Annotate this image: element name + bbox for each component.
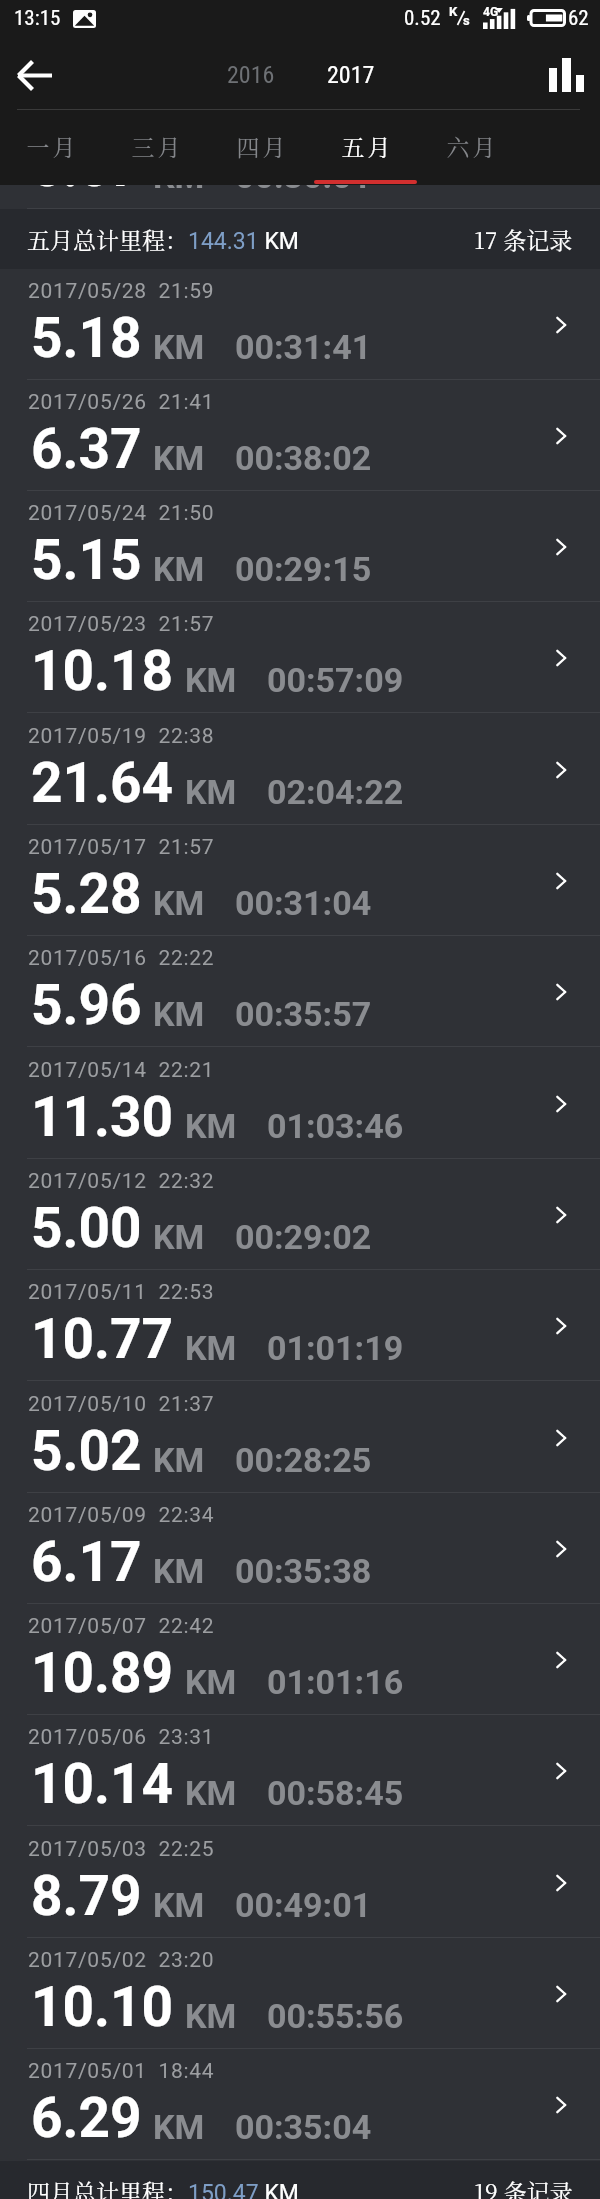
button[interactable]: 2017/05/10 21:37	[0, 1382, 600, 1493]
staticText: 三月	[130, 130, 182, 163]
staticText: 8.79	[31, 1864, 142, 1928]
staticText: 六月	[445, 130, 497, 163]
button[interactable]: 2016	[213, 49, 289, 101]
staticText: 2017/05/24 21:50	[28, 501, 215, 526]
staticText: 2017/05/11 22:53	[28, 1280, 215, 1305]
button[interactable]: 2017/05/23 21:57	[0, 602, 600, 713]
staticText: 五月总计里程：144.31 KM	[27, 223, 299, 256]
staticText: K	[449, 4, 458, 19]
button[interactable]: 一月	[0, 110, 101, 185]
staticText: 5.18	[31, 306, 142, 370]
staticText: 00:55:56	[267, 1996, 404, 2036]
staticText: 21.64	[31, 751, 174, 815]
staticText: 2017/05/09 22:34	[28, 1503, 215, 1528]
staticText: 62	[568, 6, 589, 31]
button[interactable]: 2017/05/11 22:53	[0, 1270, 600, 1381]
staticText: KM	[153, 883, 205, 923]
staticText: KM	[185, 660, 237, 700]
staticText: KM	[185, 1328, 237, 1368]
button[interactable]: 2017/05/02 23:20	[0, 1938, 600, 2049]
staticText: 01:01:19	[267, 1328, 404, 1368]
staticText: 00:30:01	[235, 156, 372, 196]
staticText: 2017/05/26 21:41	[28, 390, 215, 415]
button[interactable]: 2017	[313, 49, 389, 101]
staticText: 10.77	[31, 1307, 174, 1371]
staticText: 10.89	[31, 1641, 174, 1705]
staticText: KM	[153, 438, 205, 478]
staticText: 00:29:15	[235, 549, 372, 589]
staticText: 00:35:38	[235, 1551, 372, 1591]
staticText: KM	[153, 1217, 205, 1257]
staticText: 2017/05/28 21:59	[28, 279, 215, 304]
staticText: 2017/05/17 21:57	[28, 835, 215, 860]
staticText: 5.00	[31, 1196, 142, 1260]
staticText: 00:31:41	[235, 327, 372, 367]
staticText: 4G	[483, 5, 499, 19]
button[interactable]: 三月	[101, 110, 206, 185]
staticText: KM	[153, 2107, 205, 2147]
staticText: 5.96	[31, 973, 142, 1037]
staticText: 02:04:22	[267, 772, 404, 812]
button[interactable]: 四月	[206, 110, 311, 185]
button[interactable]: 2017/05/14 22:21	[0, 1048, 600, 1159]
staticText: 2017/05/16 22:22	[28, 946, 215, 971]
staticText: 00:31:04	[235, 883, 372, 923]
staticText: 00:28:25	[235, 1440, 372, 1480]
button[interactable]: 2017/05/07 22:42	[0, 1604, 600, 1715]
staticText: 6.37	[31, 417, 142, 481]
button[interactable]: 2017/05/09 22:34	[0, 1493, 600, 1604]
staticText: KM	[153, 1551, 205, 1591]
staticText: 2017/05/23 21:57	[28, 612, 215, 637]
button[interactable]: 2017/05/12 22:32	[0, 1159, 600, 1270]
staticText: 17 条记录	[474, 223, 573, 256]
staticText: 10.14	[31, 1752, 174, 1816]
staticText: 2017/05/12 22:32	[28, 1169, 215, 1194]
staticText: 00:57:09	[267, 660, 404, 700]
staticText: KM	[185, 1662, 237, 1702]
staticText: 2017/05/07 22:42	[28, 1614, 215, 1639]
staticText: 四月	[235, 130, 287, 163]
staticText: 5.28	[31, 862, 142, 926]
button[interactable]: 五月	[311, 110, 416, 185]
staticText: KM	[153, 1885, 205, 1925]
staticText: 00:35:57	[235, 994, 372, 1034]
button[interactable]: 2017/05/01 18:44	[0, 2049, 600, 2160]
staticText: KM	[153, 327, 205, 367]
staticText: 00:29:02	[235, 1217, 372, 1257]
staticText: s	[463, 13, 470, 28]
staticText: 00:58:45	[267, 1773, 404, 1813]
button[interactable]: 2017/05/16 22:22	[0, 936, 600, 1047]
staticText: 5.07	[31, 135, 142, 199]
staticText: 11.30	[31, 1085, 174, 1149]
staticText: 6.29	[31, 2086, 142, 2150]
staticText: 01:01:16	[267, 1662, 404, 1702]
staticText: 13:15	[14, 6, 61, 31]
staticText: 0.52	[404, 6, 441, 31]
button[interactable]: 六月	[416, 110, 521, 185]
button[interactable]: 2017/05/03 22:25	[0, 1827, 600, 1938]
button[interactable]: 2017/05/06 23:31	[0, 1715, 600, 1826]
button[interactable]: 2017/05/19 22:38	[0, 714, 600, 825]
staticText: 2016	[227, 61, 275, 89]
staticText: 2017/05/10 21:37	[28, 1392, 215, 1417]
staticText: 一月	[25, 130, 77, 163]
button[interactable]: Back	[6, 47, 62, 103]
staticText: KM	[153, 156, 205, 196]
button[interactable]: 2017/05/24 21:50	[0, 491, 600, 602]
staticText: 01:03:46	[267, 1106, 404, 1146]
staticText: 2017	[327, 61, 375, 89]
button[interactable]: 2017/05/28 21:59	[0, 269, 600, 380]
button[interactable]: 2017/05/26 21:41	[0, 380, 600, 491]
button[interactable]: 2017/05/17 21:57	[0, 825, 600, 936]
staticText: KM	[185, 772, 237, 812]
staticText: 5.02	[31, 1419, 142, 1483]
staticText: 10.10	[31, 1975, 174, 2039]
staticText: 2017/05/14 22:21	[28, 1058, 215, 1083]
button[interactable]: Statistics	[538, 47, 594, 103]
staticText: 2017/05/06 23:31	[28, 1725, 215, 1750]
staticText: 五月	[340, 130, 392, 163]
staticText: KM	[153, 549, 205, 589]
staticText: 6.17	[31, 1530, 142, 1594]
staticText: 00:49:01	[235, 1885, 372, 1925]
staticText: KM	[185, 1106, 237, 1146]
